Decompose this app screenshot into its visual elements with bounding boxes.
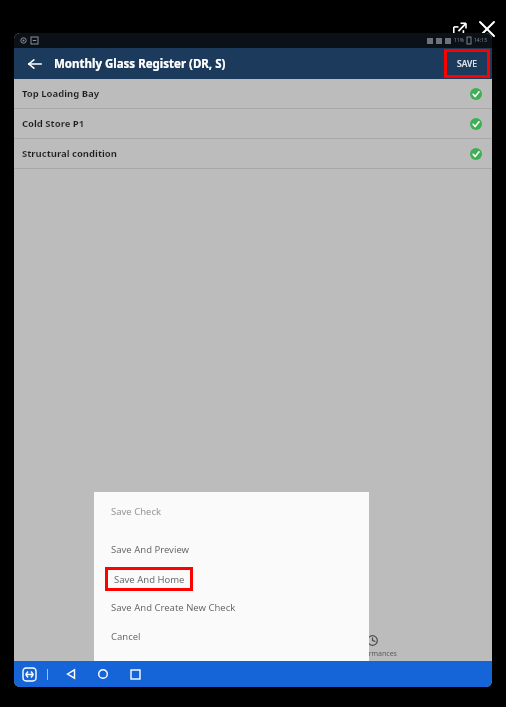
- button[interactable]: Save And Home: [94, 564, 369, 593]
- button[interactable]: Close: [476, 18, 498, 40]
- button[interactable]: Checks: [14, 633, 253, 661]
- button[interactable]: Switch input: [22, 667, 37, 682]
- button[interactable]: Conformances: [253, 633, 492, 661]
- staticText: Save And Home: [114, 573, 185, 586]
- staticText: Conformances: [349, 649, 397, 659]
- staticText: Cold Store P1: [22, 117, 85, 130]
- button[interactable]: Open externally: [448, 18, 470, 40]
- button[interactable]: Back: [62, 665, 80, 683]
- button[interactable]: Recent apps: [126, 665, 144, 683]
- staticText: Monthly Glass Register (DR, S): [54, 56, 226, 72]
- staticText: Cancel: [111, 630, 141, 643]
- staticText: Save And Create New Check: [111, 601, 236, 614]
- staticText: 11%: [454, 37, 464, 44]
- staticText: Save And Preview: [111, 543, 190, 556]
- button[interactable]: Cancel: [94, 622, 369, 651]
- staticText: 14:13: [474, 37, 487, 44]
- button[interactable]: Cold Store P1: [14, 109, 492, 138]
- button[interactable]: Structural condition: [14, 139, 492, 168]
- button[interactable]: Home: [94, 665, 112, 683]
- button[interactable]: Save And Preview: [94, 535, 369, 564]
- button[interactable]: SAVE: [447, 52, 487, 75]
- button[interactable]: Top Loading Bay: [14, 79, 492, 108]
- staticText: Save Check: [111, 505, 162, 518]
- staticText: Top Loading Bay: [22, 87, 100, 100]
- staticText: SAVE: [457, 58, 477, 70]
- button[interactable]: Back: [22, 51, 48, 77]
- staticText: Structural condition: [22, 147, 117, 160]
- button[interactable]: Save And Create New Check: [94, 593, 369, 622]
